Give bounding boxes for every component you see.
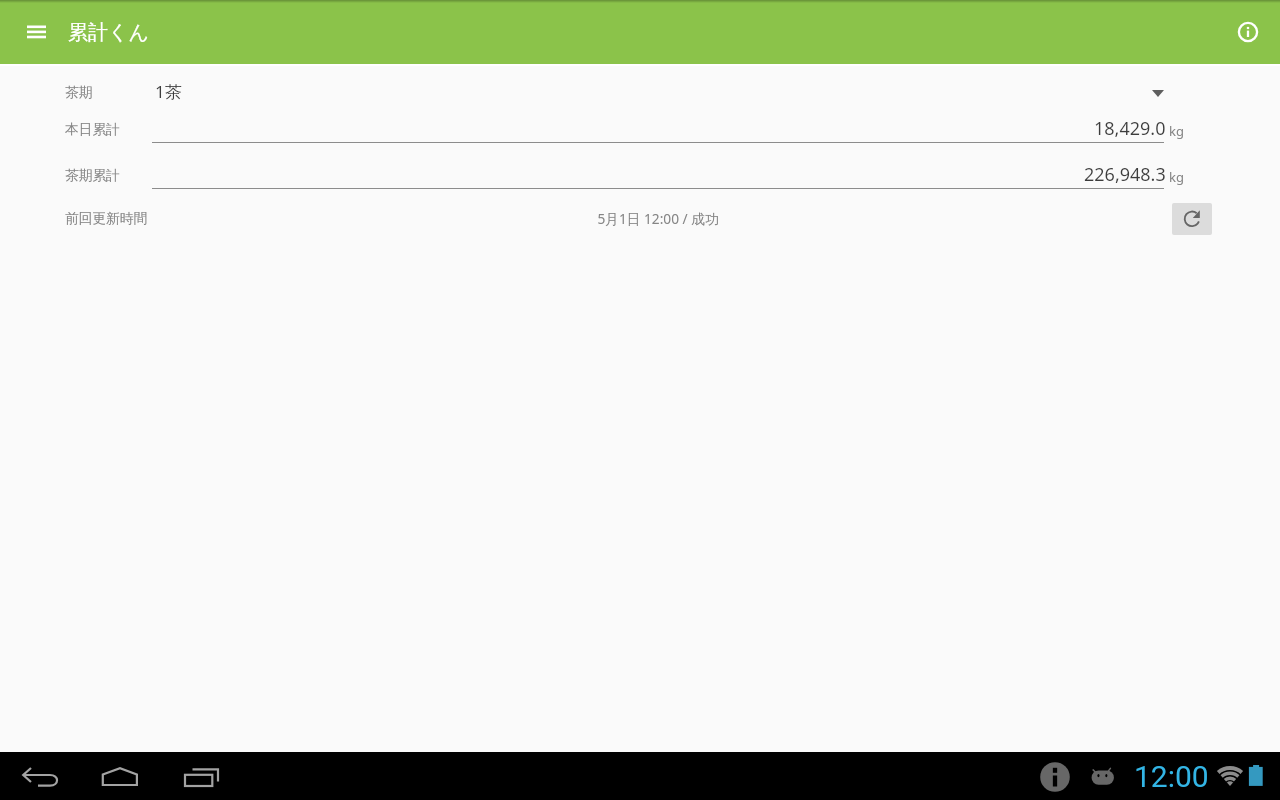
button[interactable]: Back (0, 752, 80, 800)
staticText: 茶期累計 (65, 167, 120, 184)
button[interactable]: Information (1224, 8, 1272, 56)
staticText: 12:00 (1134, 759, 1209, 794)
staticText: 前回更新時間 (65, 210, 148, 227)
button[interactable]: System information (1040, 762, 1070, 792)
staticText: 茶期 (65, 84, 93, 101)
button[interactable]: Home (80, 752, 160, 800)
staticText: 226,948.3 (1084, 162, 1166, 187)
staticText: 5月1日 12:00 / 成功 (597, 209, 719, 228)
button[interactable]: Refresh (1172, 203, 1212, 235)
staticText: kg (1169, 122, 1184, 140)
button[interactable]: 本日累計 (152, 114, 1164, 143)
staticText: 18,429.0 (1094, 116, 1166, 141)
staticText: 1茶 (155, 80, 182, 103)
button[interactable]: Tea season selector (152, 76, 1164, 108)
button[interactable]: 茶期累計 (152, 160, 1164, 189)
staticText: 累計くん (68, 20, 149, 45)
button[interactable]: Recent apps (160, 752, 240, 800)
button[interactable]: Open navigation menu (14, 10, 58, 54)
staticText: kg (1169, 168, 1184, 186)
staticText: 本日累計 (65, 121, 120, 138)
